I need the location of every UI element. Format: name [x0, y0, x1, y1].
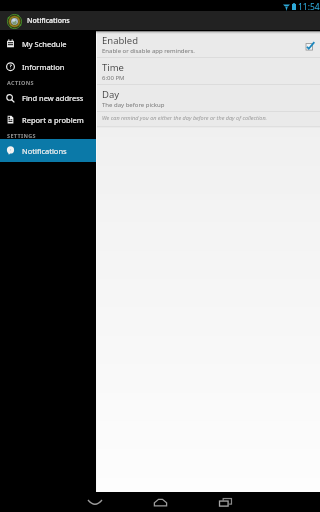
- staticText: Information: [22, 62, 65, 72]
- button[interactable]: Back: [78, 492, 112, 512]
- staticText: Enabled: [102, 34, 138, 47]
- staticText: SETTINGS: [7, 132, 36, 139]
- button[interactable]: Enabled: [97, 31, 320, 57]
- staticText: We can remind you on either the day befo…: [102, 114, 267, 121]
- staticText: 6:00 PM: [102, 74, 125, 82]
- staticText: Find new address: [22, 93, 84, 103]
- staticText: Time: [102, 61, 124, 74]
- staticText: Notifications: [22, 146, 67, 156]
- staticText: My Schedule: [22, 39, 67, 49]
- staticText: Day: [102, 88, 120, 101]
- button[interactable]: Notifications: [7, 11, 70, 31]
- button[interactable]: Find new address: [0, 87, 96, 109]
- button[interactable]: Day: [97, 85, 320, 111]
- staticText: Notifications: [27, 16, 70, 26]
- staticText: Report a problem: [22, 115, 84, 125]
- button[interactable]: My Schedule: [0, 32, 96, 55]
- staticText: The day before pickup: [102, 101, 165, 109]
- button[interactable]: Home: [143, 492, 177, 512]
- button[interactable]: Notifications: [0, 139, 96, 162]
- staticText: Enable or disable app reminders.: [102, 47, 195, 55]
- button[interactable]: Report a problem: [0, 108, 96, 131]
- staticText: ACTIONS: [7, 79, 34, 86]
- button[interactable]: Time: [97, 58, 320, 84]
- button[interactable]: Information: [0, 55, 96, 78]
- staticText: 11:54: [298, 1, 320, 12]
- button[interactable]: Recent apps: [208, 492, 242, 512]
